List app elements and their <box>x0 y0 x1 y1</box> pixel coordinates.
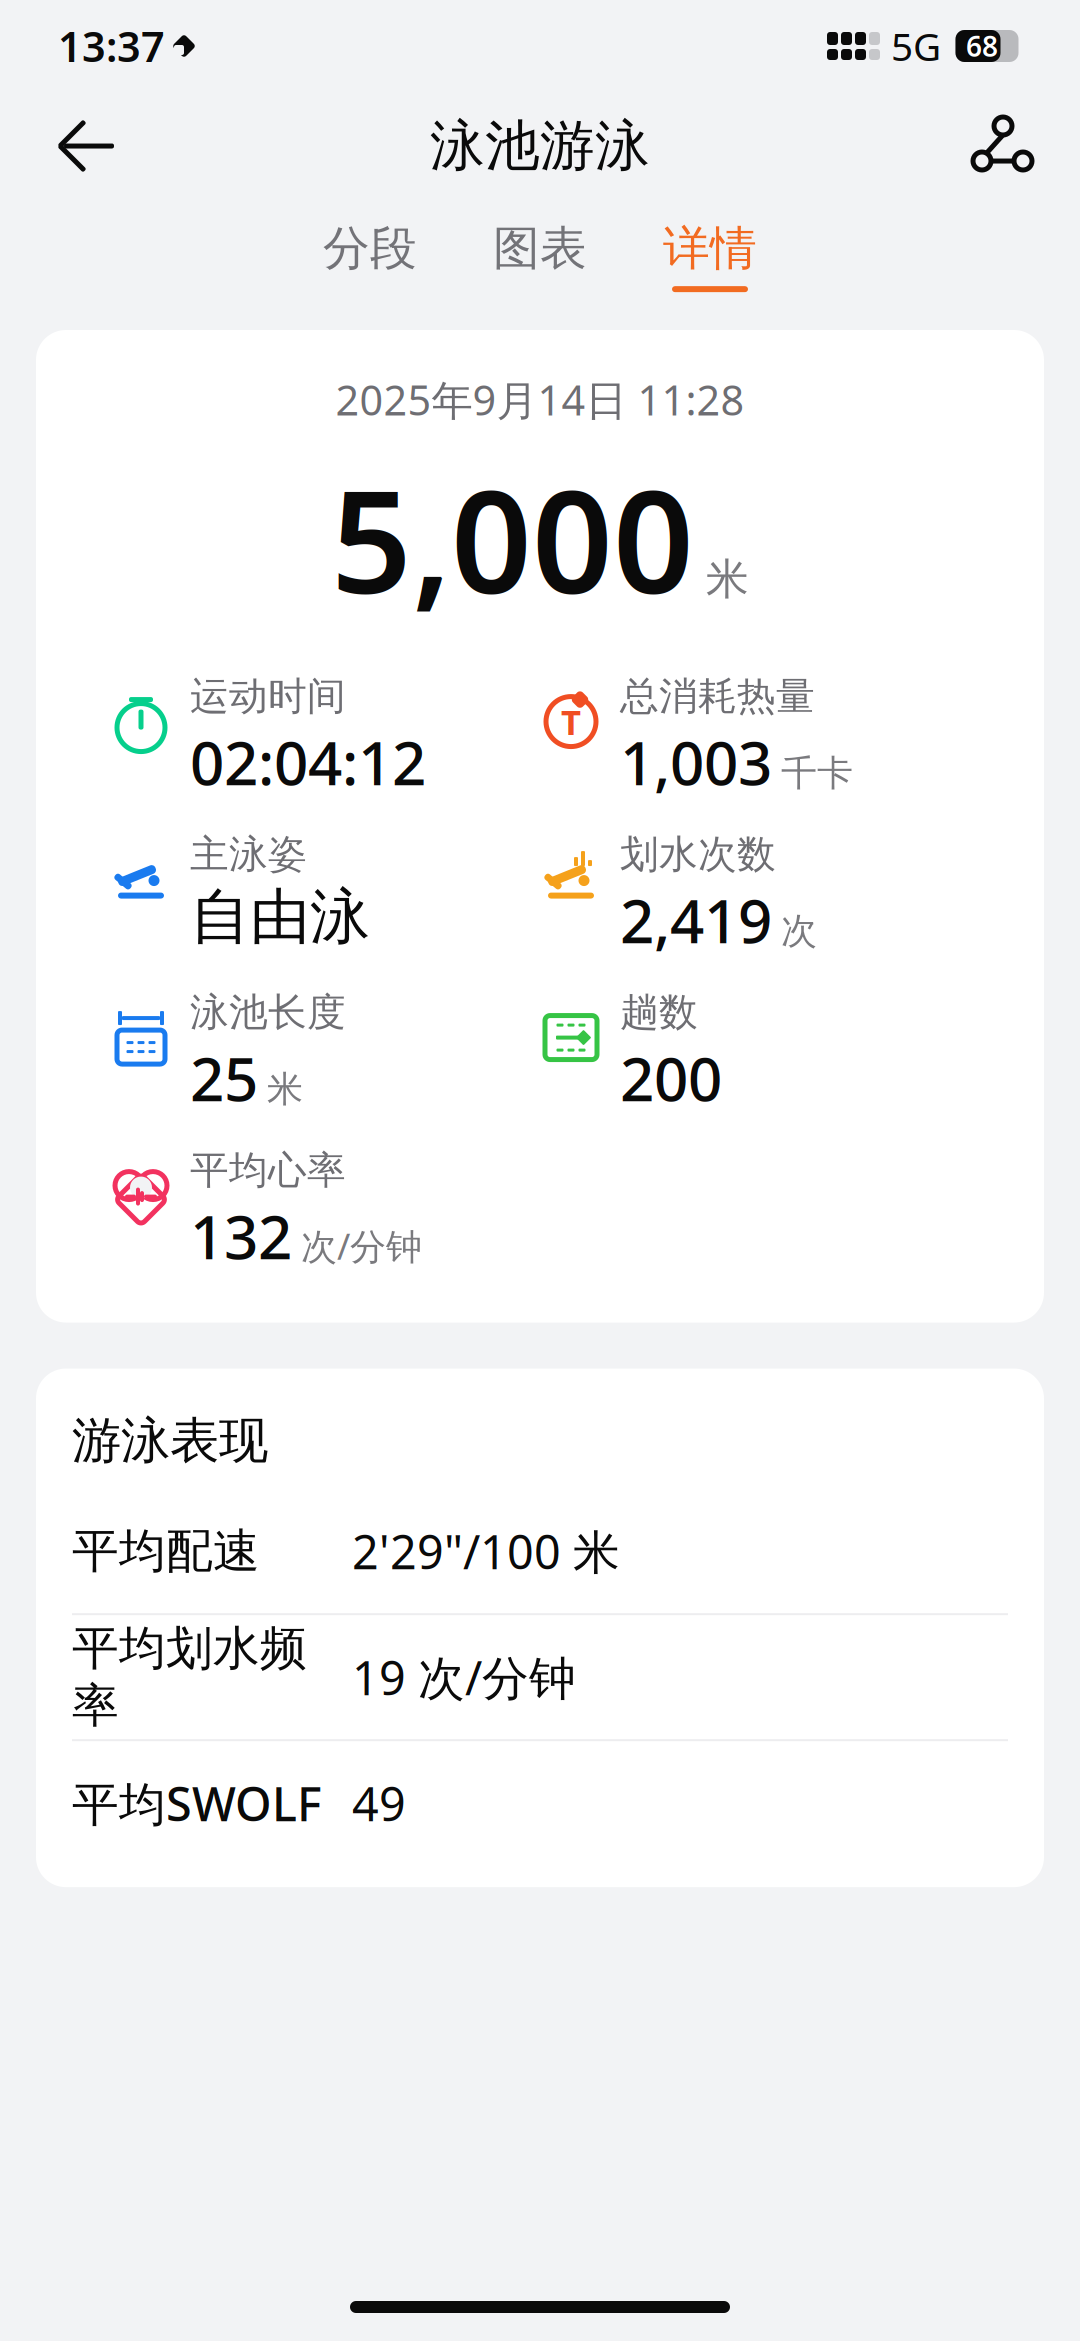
button[interactable]: 返回 <box>36 98 132 194</box>
staticText: 趟数 <box>620 989 698 1036</box>
staticText: 次 <box>781 909 817 953</box>
staticText: 49 <box>352 1772 406 1834</box>
staticText: 游泳表现 <box>72 1411 268 1471</box>
staticText: 米 <box>706 553 749 606</box>
staticText: 平均配速 <box>72 1522 260 1580</box>
staticText: 5G <box>891 20 941 72</box>
staticText: 2'29"/100 米 <box>352 1520 620 1582</box>
staticText: 25 <box>190 1038 258 1118</box>
staticText: 2025年9月14日 11:28 <box>335 372 744 427</box>
staticText: 5,000 <box>331 445 694 633</box>
button[interactable]: 分享 <box>948 98 1044 194</box>
staticText: 2,419 <box>620 880 772 960</box>
staticText: 平均划水频率 <box>72 1620 307 1734</box>
staticText: 02:04:12 <box>190 722 426 802</box>
staticText: 千卡 <box>781 751 853 795</box>
staticText: 次/分钟 <box>301 1222 422 1270</box>
staticText: 运动时间 <box>190 673 346 720</box>
staticText: T <box>561 699 581 745</box>
staticText: 图表 <box>493 220 587 277</box>
staticText: 19 次/分钟 <box>352 1646 576 1708</box>
staticText: 总消耗热量 <box>620 673 815 720</box>
staticText: 平均心率 <box>190 1147 346 1194</box>
staticText: 泳池长度 <box>190 989 346 1036</box>
staticText: 泳池游泳 <box>430 112 650 179</box>
staticText: 详情 <box>663 220 757 277</box>
staticText: 划水次数 <box>620 831 776 878</box>
staticText: 自由泳 <box>190 880 370 954</box>
button[interactable]: 详情 <box>649 214 771 298</box>
button[interactable]: 图表 <box>479 214 601 298</box>
staticText: 分段 <box>323 220 417 277</box>
staticText: 68 <box>966 27 998 65</box>
staticText: 主泳姿 <box>190 831 307 878</box>
staticText: 132 <box>190 1196 292 1276</box>
staticText: 平均SWOLF <box>72 1772 322 1834</box>
staticText: 200 <box>620 1038 722 1118</box>
button[interactable]: 分段 <box>309 214 431 298</box>
staticText: 13:37 <box>58 19 165 73</box>
staticText: 1,003 <box>620 722 772 802</box>
staticText: 米 <box>267 1067 303 1111</box>
